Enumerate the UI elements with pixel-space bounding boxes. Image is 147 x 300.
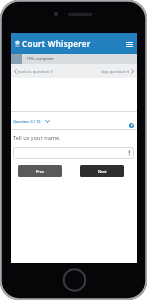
staticText: skip question 5 bbox=[101, 69, 130, 74]
staticText: back to question 3 bbox=[18, 69, 53, 74]
button[interactable] bbox=[13, 147, 134, 159]
staticText: Prev bbox=[36, 169, 44, 174]
staticText: Court Whisperer bbox=[22, 38, 91, 49]
staticText: Next bbox=[98, 169, 107, 174]
staticText: ? bbox=[131, 123, 133, 128]
staticText: Question 3 / 10 bbox=[13, 119, 41, 124]
button[interactable] bbox=[124, 38, 135, 50]
staticText: 15% complete bbox=[26, 56, 54, 62]
button[interactable]: Court Whisperer bbox=[11, 33, 137, 54]
button[interactable]: Prev bbox=[18, 165, 62, 177]
staticText: Tell us your name. bbox=[13, 134, 61, 142]
button[interactable]: Next bbox=[80, 165, 124, 177]
button[interactable]: Question 3 / 10 bbox=[13, 119, 50, 124]
button[interactable]: back to question 3 bbox=[14, 69, 53, 74]
button[interactable]: ? bbox=[129, 123, 134, 128]
button[interactable]: skip question 5 bbox=[101, 69, 134, 74]
